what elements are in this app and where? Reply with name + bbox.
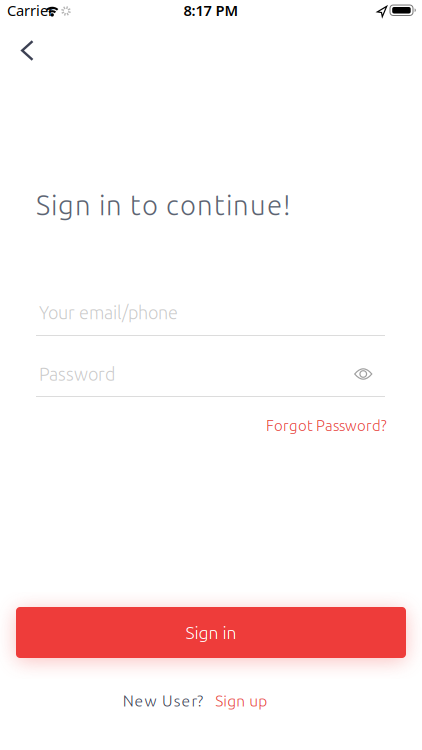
button[interactable]: Sign up [215, 692, 267, 709]
staticText: 8:17 PM [183, 0, 238, 20]
staticText: Sign in to continue! [36, 190, 291, 220]
staticText: Your email/phone [39, 302, 178, 323]
staticText: Sign in [185, 623, 236, 642]
staticText: Password [39, 364, 115, 384]
button[interactable]: Forgot Password? [266, 417, 387, 434]
staticText: Forgot Password? [266, 417, 387, 434]
button[interactable]: Back [7, 30, 48, 71]
button[interactable]: Sign in [16, 607, 406, 658]
button[interactable]: Show password [348, 361, 378, 386]
staticText: New User? [123, 692, 203, 709]
staticText: Sign up [215, 692, 267, 709]
staticText: Carrier [7, 0, 54, 20]
